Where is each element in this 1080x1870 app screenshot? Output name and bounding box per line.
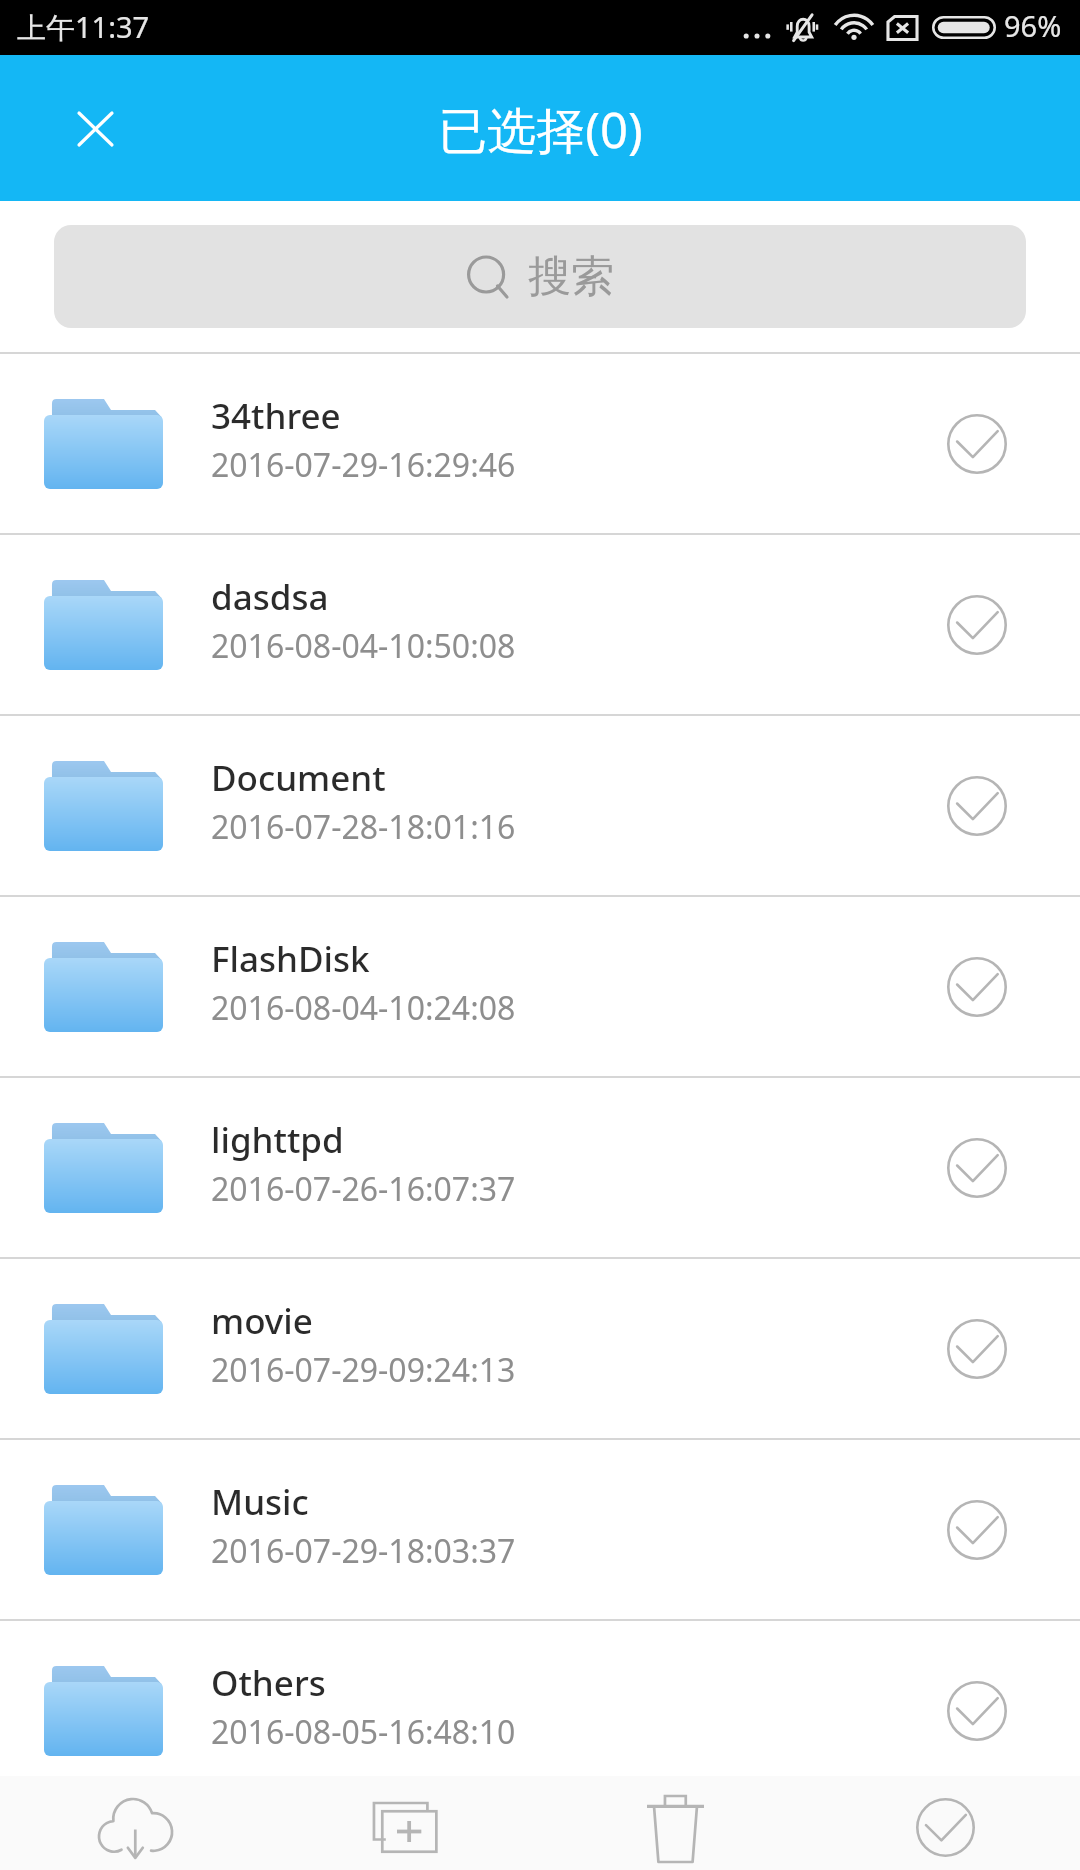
button[interactable]: Select FlashDisk (925, 927, 1029, 1047)
staticText: movie (211, 1297, 313, 1345)
staticText: 2016-08-04-10:50:08 (211, 624, 516, 668)
button[interactable]: Select Music (925, 1470, 1029, 1590)
button[interactable]: 34three (0, 354, 1080, 533)
staticText: dasdsa (211, 573, 329, 621)
button[interactable]: Select dasdsa (925, 565, 1029, 685)
staticText: 96% (1004, 6, 1062, 45)
button[interactable]: New folder (270, 1776, 540, 1870)
button[interactable]: Select Document (925, 746, 1029, 866)
staticText: lighttpd (211, 1116, 344, 1164)
button[interactable]: 搜索 (54, 225, 1026, 328)
staticText: Music (211, 1478, 309, 1526)
button[interactable]: FlashDisk (0, 897, 1080, 1076)
staticText: 上午11:37 (17, 7, 150, 47)
staticText: 搜索 (528, 250, 614, 304)
staticText: 2016-07-29-18:03:37 (211, 1529, 516, 1573)
button[interactable]: Select all (810, 1776, 1080, 1870)
button[interactable]: Music (0, 1440, 1080, 1619)
button[interactable]: Select lighttpd (925, 1108, 1029, 1228)
staticText: 2016-07-28-18:01:16 (211, 805, 516, 849)
staticText: FlashDisk (211, 935, 370, 983)
button[interactable]: Select Others (925, 1651, 1029, 1771)
staticText: Document (211, 754, 386, 802)
button[interactable]: Select 34three (925, 384, 1029, 504)
button[interactable]: Delete (540, 1776, 810, 1870)
button[interactable]: Document (0, 716, 1080, 895)
button[interactable]: lighttpd (0, 1078, 1080, 1257)
staticText: Others (211, 1659, 326, 1707)
staticText: 2016-07-29-09:24:13 (211, 1348, 516, 1392)
button[interactable]: Download (0, 1776, 270, 1870)
button[interactable]: Select movie (925, 1289, 1029, 1409)
staticText: 2016-08-04-10:24:08 (211, 986, 516, 1030)
staticText: 34three (211, 392, 341, 440)
staticText: 已选择(0) (438, 96, 643, 163)
staticText: 2016-08-05-16:48:10 (211, 1710, 516, 1754)
button[interactable]: movie (0, 1259, 1080, 1438)
staticText: 2016-07-26-16:07:37 (211, 1167, 516, 1211)
button[interactable]: dasdsa (0, 535, 1080, 714)
button[interactable]: Close (40, 73, 151, 184)
button[interactable]: Others (0, 1621, 1080, 1776)
staticText: 2016-07-29-16:29:46 (211, 443, 516, 487)
